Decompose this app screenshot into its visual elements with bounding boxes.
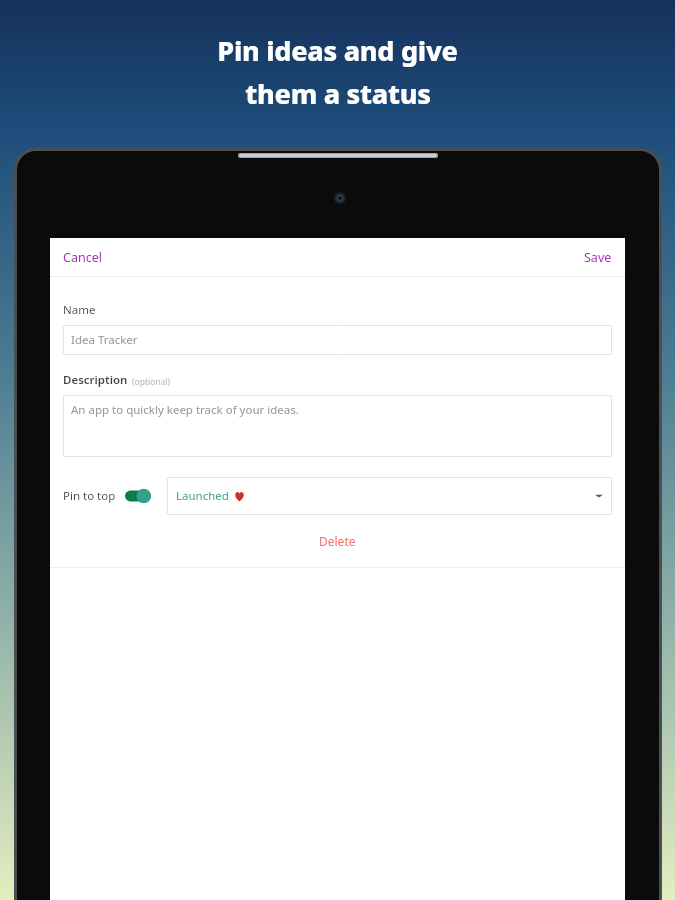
button[interactable]: An app to quickly keep track of your ide…	[63, 395, 612, 457]
button[interactable]: Delete	[305, 529, 370, 553]
button[interactable]: Idea Tracker	[63, 325, 612, 355]
button[interactable]: Save	[571, 243, 625, 272]
button[interactable]: Cancel	[50, 243, 115, 272]
staticText: An app to quickly keep track of your ide…	[71, 402, 299, 418]
staticText: Cancel	[63, 249, 102, 266]
button[interactable]: Pin to top toggle	[125, 489, 151, 503]
staticText: Save	[584, 249, 612, 266]
staticText: Launched	[176, 488, 229, 504]
staticText: Delete	[319, 533, 356, 549]
staticText: Pin to top	[63, 488, 116, 504]
staticText: Description	[63, 372, 128, 388]
button[interactable]: Pin to top	[63, 488, 151, 504]
staticText: Pin ideas and give	[217, 32, 458, 69]
staticText: them a status	[245, 75, 431, 112]
staticText: Name	[63, 302, 96, 318]
staticText: Idea Tracker	[71, 332, 138, 348]
button[interactable]: Launched	[167, 477, 612, 515]
staticText: (optional)	[132, 376, 171, 388]
